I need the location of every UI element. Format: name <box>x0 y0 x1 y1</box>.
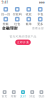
staticText: 付款码 <box>13 12 22 16</box>
staticText: 金融理财 <box>2 26 18 31</box>
button[interactable]: 更多 <box>34 17 46 26</box>
button[interactable]: 卡包 <box>34 7 46 16</box>
button[interactable]: 支付 <box>18 90 28 98</box>
staticText: 收款 <box>26 12 32 16</box>
button[interactable]: 付款码 <box>11 7 23 16</box>
button[interactable]: 立即开通 <box>15 40 31 45</box>
staticText: 暂无可用的理财产品 <box>9 35 36 38</box>
staticText: 我的 <box>38 95 44 98</box>
staticText: 支付 <box>20 95 26 98</box>
staticText: 9:41 <box>1 0 8 4</box>
button[interactable]: 理财 <box>9 90 18 98</box>
staticText: 消息 <box>29 95 35 98</box>
button[interactable]: 收款 <box>23 7 34 16</box>
staticText: 转账 <box>3 22 9 26</box>
staticText: 首页 <box>2 95 8 98</box>
staticText: 扫一扫 <box>1 12 10 16</box>
button[interactable]: 消息 <box>28 90 37 98</box>
staticText: 账单 <box>26 22 32 26</box>
button[interactable]: 首页 <box>0 90 9 98</box>
staticText: 更多 <box>37 22 43 26</box>
button[interactable]: 红包 <box>11 17 23 26</box>
button[interactable]: 扫一扫 <box>0 7 11 16</box>
staticText: 立即开通 <box>17 40 29 44</box>
staticText: ●●● <box>38 1 44 4</box>
staticText: 理财 <box>11 95 17 98</box>
staticText: 卡包 <box>37 12 43 16</box>
button[interactable]: 转账 <box>0 17 11 26</box>
staticText: 红包 <box>14 22 20 26</box>
button[interactable]: 查看全部 <box>32 27 44 30</box>
button[interactable]: 账单 <box>23 17 34 26</box>
staticText: 查看全部 <box>32 27 44 30</box>
button[interactable]: 我的 <box>37 90 46 98</box>
